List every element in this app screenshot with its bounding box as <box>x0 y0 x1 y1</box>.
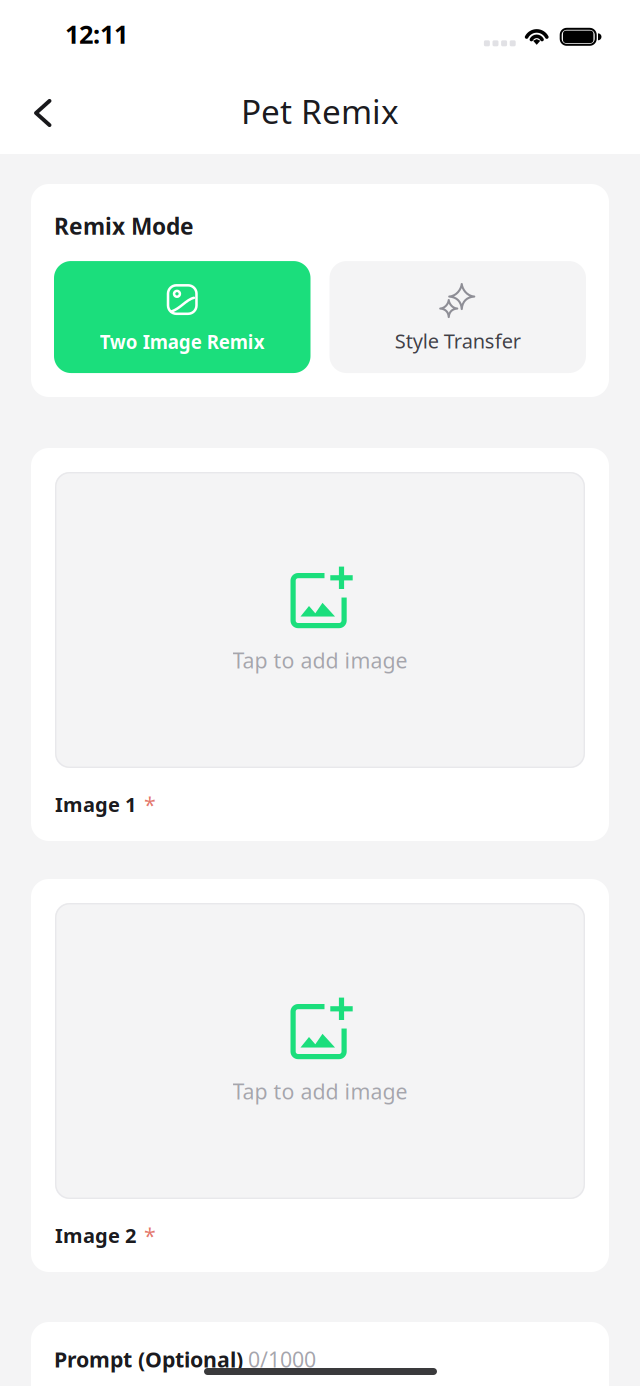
staticText: * <box>144 1221 156 1249</box>
button[interactable]: Style Transfer <box>329 261 586 373</box>
staticText: * <box>144 790 156 818</box>
staticText: Image 1 <box>55 791 136 817</box>
button[interactable]: Tap to add image <box>55 903 585 1199</box>
staticText: Pet Remix <box>241 89 399 133</box>
staticText: Remix Mode <box>54 211 194 241</box>
staticText: Two Image Remix <box>100 329 265 354</box>
button[interactable]: Tap to add image <box>55 472 585 768</box>
button[interactable]: Two Image Remix <box>54 261 310 373</box>
staticText: 12:11 <box>65 17 128 51</box>
button[interactable]: Back <box>18 84 68 142</box>
staticText: 0/1000 <box>248 1345 316 1373</box>
staticText: Tap to add image <box>232 1077 407 1105</box>
staticText: Prompt (Optional) <box>54 1345 243 1373</box>
staticText: Tap to add image <box>232 646 407 674</box>
staticText: Style Transfer <box>395 327 521 354</box>
staticText: Image 2 <box>55 1222 136 1248</box>
